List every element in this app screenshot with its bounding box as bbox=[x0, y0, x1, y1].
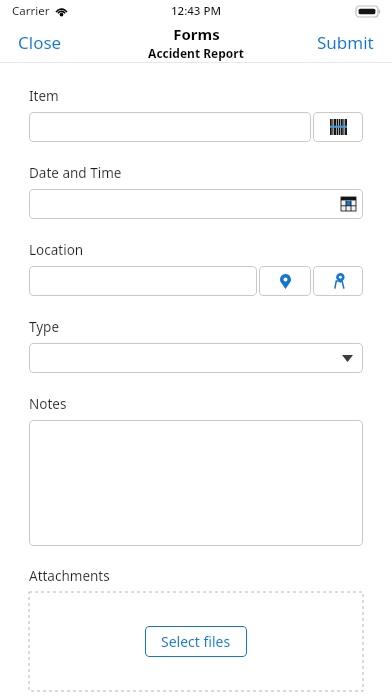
staticText: Item bbox=[29, 87, 59, 105]
button[interactable] bbox=[29, 420, 363, 546]
button[interactable]: Pick date and time bbox=[341, 197, 356, 211]
button[interactable] bbox=[29, 343, 363, 373]
button[interactable]: Select files bbox=[29, 592, 363, 691]
button[interactable]: Use current location bbox=[259, 266, 311, 296]
staticText: Date and Time bbox=[29, 164, 122, 182]
button[interactable]: Close bbox=[0, 24, 80, 61]
staticText: Forms bbox=[173, 24, 220, 44]
staticText: Notes bbox=[29, 395, 67, 413]
button[interactable]: Choose location on map bbox=[313, 266, 363, 296]
staticText: Location bbox=[29, 241, 84, 259]
staticText: Accident Report bbox=[148, 45, 244, 61]
button[interactable]: Submit bbox=[299, 24, 392, 61]
staticText: Select files bbox=[161, 632, 231, 651]
staticText: Carrier bbox=[12, 3, 50, 19]
staticText: Close bbox=[18, 31, 62, 54]
staticText: Attachments bbox=[29, 567, 110, 585]
button[interactable] bbox=[29, 112, 311, 142]
button[interactable] bbox=[29, 266, 257, 296]
button[interactable]: Scan barcode bbox=[313, 112, 363, 142]
staticText: Type bbox=[29, 318, 60, 336]
staticText: Submit bbox=[317, 31, 374, 54]
button[interactable]: Select files bbox=[145, 626, 247, 657]
button[interactable] bbox=[29, 189, 363, 219]
staticText: 12:43 PM bbox=[171, 3, 222, 19]
button[interactable] bbox=[29, 343, 363, 373]
